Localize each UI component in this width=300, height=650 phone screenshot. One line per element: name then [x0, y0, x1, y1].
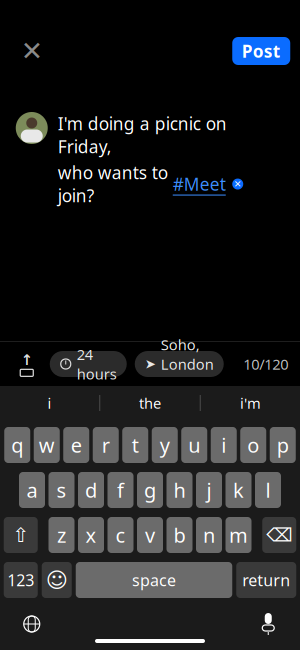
button[interactable]: k [225, 472, 251, 508]
staticText: ✕ [234, 179, 242, 189]
staticText: a [26, 477, 37, 503]
button[interactable]: l [255, 472, 281, 508]
button[interactable]: z [48, 517, 74, 553]
button[interactable]: a [19, 472, 45, 508]
staticText: Soho, London… [161, 335, 214, 393]
button[interactable]: q [4, 427, 30, 463]
button[interactable]: n [196, 517, 222, 553]
staticText: ☺ [46, 568, 68, 592]
staticText: c [115, 522, 125, 548]
button[interactable]: o [240, 427, 266, 463]
staticText: 123 [7, 569, 34, 591]
button[interactable]: e [63, 427, 89, 463]
button[interactable]: Delete [262, 517, 296, 553]
staticText: i [47, 393, 51, 413]
button[interactable]: i [211, 427, 237, 463]
staticText: the [139, 393, 161, 413]
staticText: f [117, 477, 124, 503]
button[interactable]: Change keyboard [14, 607, 50, 641]
button[interactable]: h [166, 472, 192, 508]
staticText: x [85, 522, 96, 548]
button[interactable]: u [181, 427, 207, 463]
button[interactable]: w [34, 427, 60, 463]
button[interactable]: c [107, 517, 133, 553]
staticText: q [11, 432, 23, 458]
staticText: s [56, 477, 66, 503]
staticText: w [39, 432, 55, 458]
staticText: k [233, 477, 244, 503]
staticText: d [85, 477, 97, 503]
staticText: 24 hours [77, 344, 117, 383]
button[interactable]: r [93, 427, 119, 463]
button[interactable]: f [107, 472, 133, 508]
button[interactable]: j [196, 472, 222, 508]
button[interactable]: 123 [4, 562, 38, 598]
staticText: z [57, 522, 66, 548]
staticText: l [265, 477, 270, 503]
button[interactable]: y [152, 427, 178, 463]
button[interactable]: ➤ [135, 351, 224, 377]
button[interactable]: space [76, 562, 232, 598]
staticText: u [188, 432, 200, 458]
staticText: e [71, 432, 82, 458]
staticText: I'm doing a picnic on Friday, [58, 112, 227, 158]
button[interactable]: s [48, 472, 74, 508]
staticText: b [173, 522, 185, 548]
button[interactable]: i [0, 386, 99, 420]
button[interactable]: d [78, 472, 104, 508]
button[interactable]: Remove tag [231, 177, 245, 191]
button[interactable]: Close [10, 29, 54, 73]
button[interactable]: Share [12, 350, 42, 378]
button[interactable]: Emoji [42, 562, 72, 598]
staticText: h [173, 477, 185, 503]
button[interactable]: the [100, 386, 200, 420]
staticText: i'm [240, 393, 261, 413]
button[interactable]: x [78, 517, 104, 553]
staticText: #Meet [173, 172, 226, 195]
staticText: ⌫ [266, 524, 292, 546]
button[interactable]: return [236, 562, 296, 598]
button[interactable]: p [270, 427, 296, 463]
staticText: Post [242, 39, 281, 62]
button[interactable]: 24 hours [50, 351, 127, 377]
staticText: o [247, 432, 259, 458]
staticText: t [132, 432, 139, 458]
button[interactable]: t [122, 427, 148, 463]
staticText: who wants to join? [58, 161, 168, 207]
button[interactable]: v [137, 517, 163, 553]
staticText: ⇧ [12, 524, 29, 546]
staticText: ↑ [21, 352, 33, 368]
button[interactable]: g [137, 472, 163, 508]
staticText: space [132, 569, 176, 591]
button[interactable]: Shift [4, 517, 38, 553]
staticText: j [206, 477, 211, 503]
staticText: ➤ [145, 356, 156, 371]
staticText: r [102, 432, 110, 458]
button[interactable]: b [166, 517, 192, 553]
button[interactable]: Post [232, 37, 290, 65]
staticText: 10/120 [243, 354, 288, 374]
staticText: v [145, 522, 155, 548]
staticText: m [229, 522, 248, 548]
staticText: g [144, 477, 156, 503]
button[interactable]: Dictation [250, 607, 286, 641]
staticText: y [160, 432, 170, 458]
button[interactable]: m [225, 517, 251, 553]
staticText: return [242, 569, 290, 591]
staticText: i [221, 432, 226, 458]
button[interactable]: i'm [201, 386, 300, 420]
staticText: p [277, 432, 289, 458]
staticText: ✕ [21, 36, 43, 66]
staticText: n [203, 522, 215, 548]
